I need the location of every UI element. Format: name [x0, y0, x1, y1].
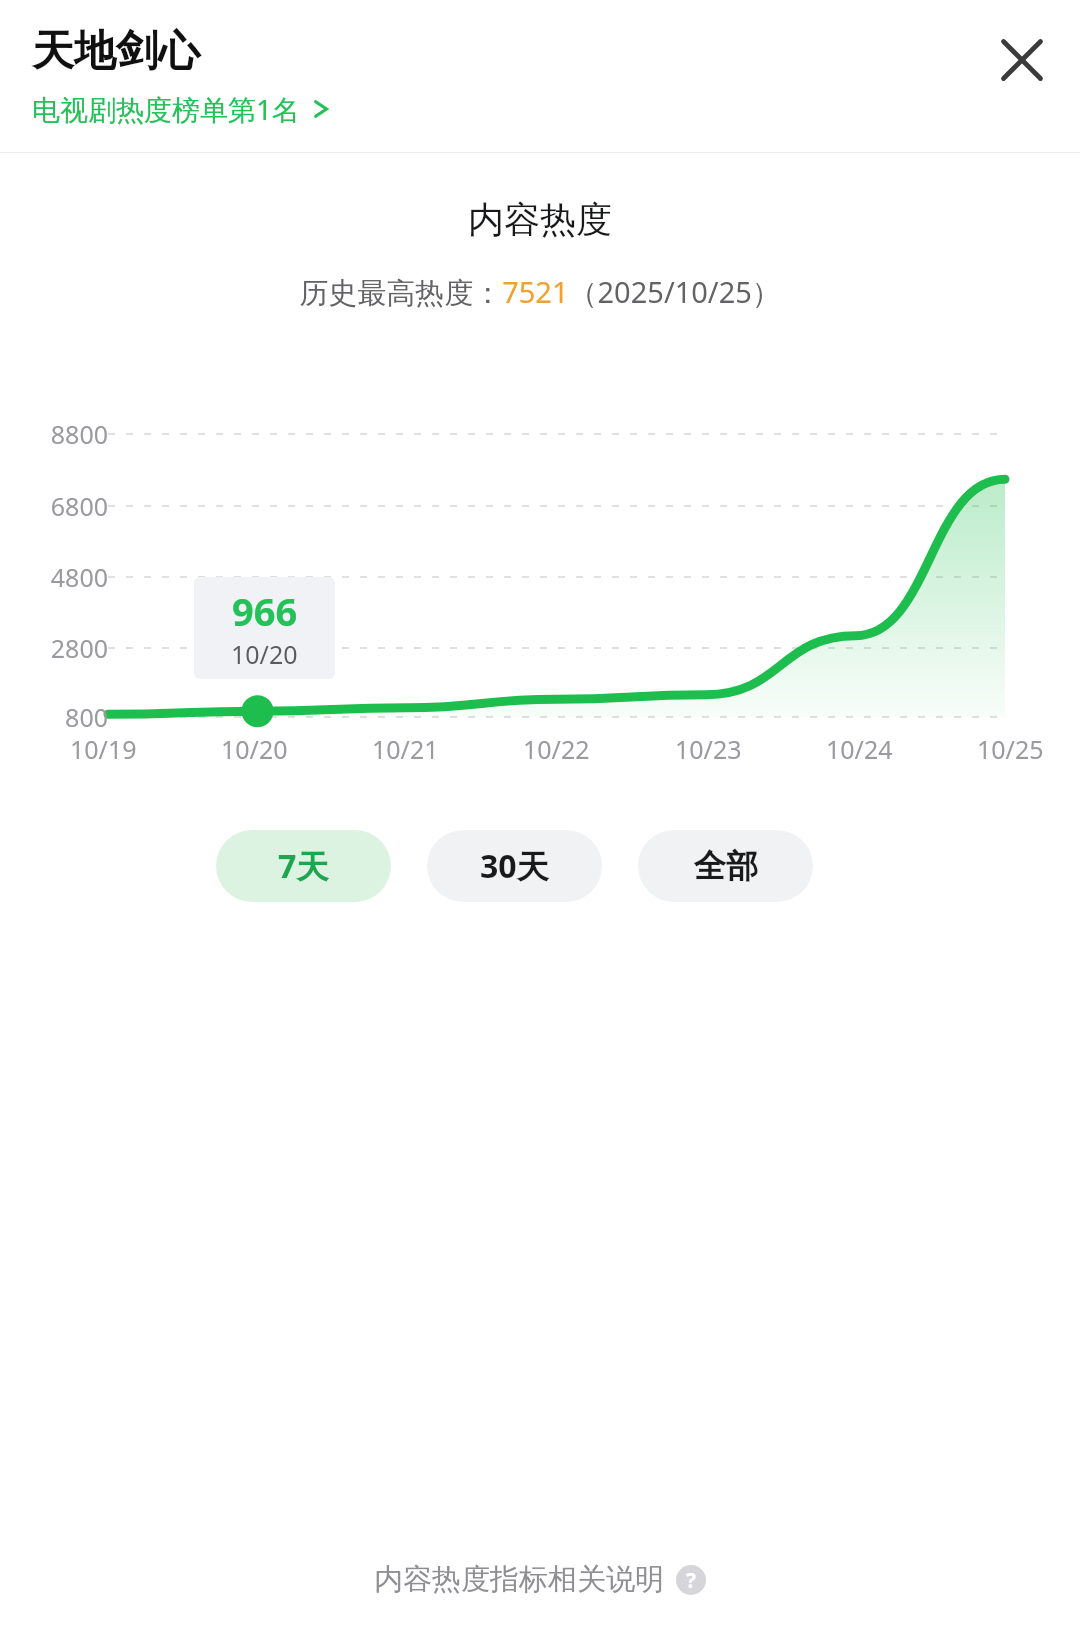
staticText: 10/20	[231, 637, 298, 671]
button[interactable]: Close	[982, 20, 1062, 100]
button[interactable]: 7天	[216, 830, 391, 902]
button[interactable]: 内容热度指标相关说明	[374, 1561, 706, 1598]
staticText: 10/24	[826, 732, 893, 766]
staticText: 内容热度指标相关说明	[374, 1561, 664, 1598]
staticText: 天地剑心	[32, 25, 200, 78]
staticText: 2800	[36, 631, 108, 665]
staticText: ?	[686, 1566, 697, 1595]
button[interactable]: 电视剧热度榜单第1名	[32, 90, 331, 128]
staticText: 7天	[278, 844, 329, 888]
staticText: 966	[232, 585, 298, 637]
staticText: 6800	[36, 489, 108, 523]
staticText: 全部	[694, 846, 758, 886]
staticText: 4800	[36, 560, 108, 594]
staticText: 10/23	[675, 732, 742, 766]
staticText: 电视剧热度榜单第1名	[32, 90, 301, 128]
staticText: 10/20	[221, 732, 288, 766]
staticText: 10/22	[523, 732, 590, 766]
staticText: 800	[36, 700, 108, 734]
button[interactable]: 30天	[427, 830, 602, 902]
staticText: 8800	[36, 417, 108, 451]
staticText: 历史最高热度：7521（2025/10/25）	[0, 272, 1080, 312]
staticText: 内容热度	[0, 197, 1080, 242]
staticText: 10/25	[977, 732, 1044, 766]
staticText: 10/21	[372, 732, 439, 766]
staticText: 30天	[480, 844, 549, 888]
staticText: 10/19	[70, 732, 137, 766]
button[interactable]: 全部	[638, 830, 813, 902]
